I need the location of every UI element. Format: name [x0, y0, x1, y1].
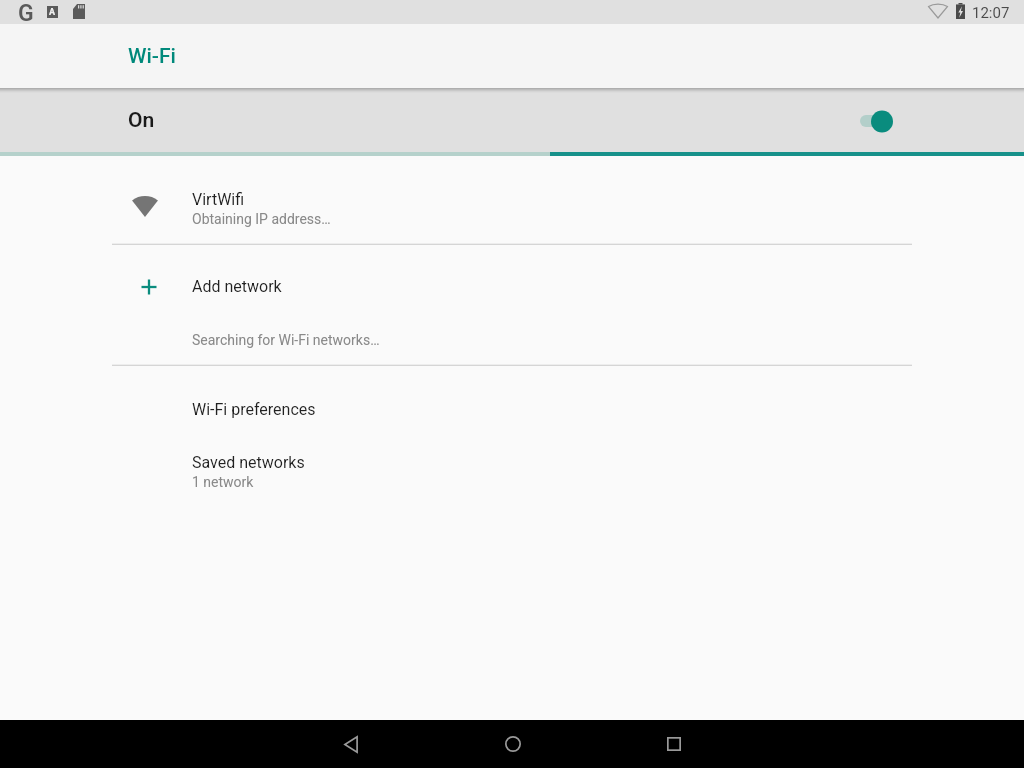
button[interactable]: On [0, 88, 1024, 152]
button[interactable]: Saved networks [0, 430, 1024, 502]
staticText: A [49, 7, 56, 18]
staticText: G [18, 0, 34, 24]
button[interactable]: Back [319, 720, 383, 768]
staticText: 12:07 [972, 4, 1010, 22]
button[interactable]: Home [481, 720, 545, 768]
staticText: On [128, 108, 155, 133]
staticText: Searching for Wi-Fi networks… [192, 332, 380, 348]
button[interactable]: Recent apps [642, 720, 706, 768]
button[interactable]: Wi-Fi preferences [0, 366, 1024, 430]
staticText: Obtaining IP address… [192, 211, 331, 227]
staticText: Wi-Fi preferences [192, 400, 316, 419]
staticText: 1 network [192, 474, 254, 490]
button[interactable]: Add network [0, 245, 1024, 303]
staticText: Add network [192, 277, 282, 296]
button[interactable]: Wi-Fi on [842, 93, 910, 147]
staticText: Wi-Fi [128, 44, 176, 69]
staticText: Saved networks [192, 453, 305, 472]
button[interactable]: VirtWifi [0, 156, 1024, 244]
staticText: VirtWifi [192, 190, 245, 209]
